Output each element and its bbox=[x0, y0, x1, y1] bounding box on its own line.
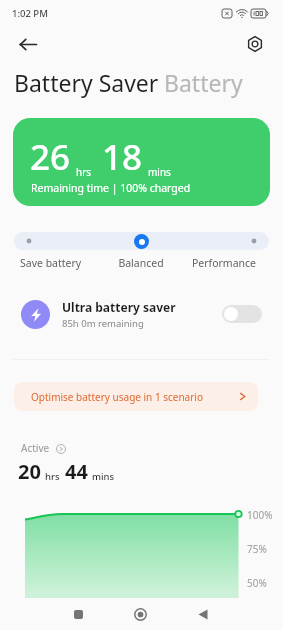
staticText: 50% bbox=[247, 576, 267, 590]
staticText: 100% bbox=[247, 508, 273, 522]
staticText: 1:02 PM bbox=[12, 7, 48, 20]
staticText: Active bbox=[21, 441, 50, 455]
button[interactable]: Performance bbox=[183, 256, 256, 270]
staticText: 44 bbox=[65, 458, 88, 485]
staticText: hrs bbox=[76, 165, 92, 179]
button[interactable]: Save battery bbox=[20, 256, 82, 270]
staticText: Remaining time | 100% charged bbox=[31, 181, 191, 195]
staticText: Optimise battery usage in 1 scenario bbox=[31, 390, 203, 404]
button[interactable]: Battery bbox=[164, 67, 243, 98]
button[interactable]: Info bbox=[55, 443, 66, 454]
staticText: 18 bbox=[102, 133, 143, 181]
button[interactable]: Ultra battery saver bbox=[0, 295, 283, 333]
button[interactable]: Back bbox=[181, 598, 225, 630]
button[interactable]: Optimise battery usage in 1 scenario bbox=[14, 382, 258, 411]
button[interactable]: Recents bbox=[56, 598, 100, 630]
staticText: 20 bbox=[18, 458, 41, 485]
staticText: mins bbox=[92, 470, 115, 483]
staticText: Ultra battery saver bbox=[62, 299, 176, 315]
button[interactable]: Balanced mode bbox=[134, 234, 149, 249]
button[interactable]: Ultra battery saver toggle bbox=[222, 305, 262, 323]
button[interactable]: Battery Saver bbox=[14, 67, 159, 98]
staticText: 26 bbox=[30, 133, 71, 181]
staticText: 75% bbox=[247, 542, 267, 556]
button[interactable]: Back bbox=[16, 32, 40, 56]
button[interactable]: 26 bbox=[13, 118, 270, 206]
staticText: hrs bbox=[45, 470, 60, 483]
button[interactable]: Balanced bbox=[112, 256, 170, 270]
button[interactable]: Home bbox=[118, 598, 162, 630]
staticText: 85h 0m remaining bbox=[62, 317, 144, 330]
staticText: mins bbox=[148, 165, 171, 179]
button[interactable]: Settings bbox=[243, 32, 267, 56]
